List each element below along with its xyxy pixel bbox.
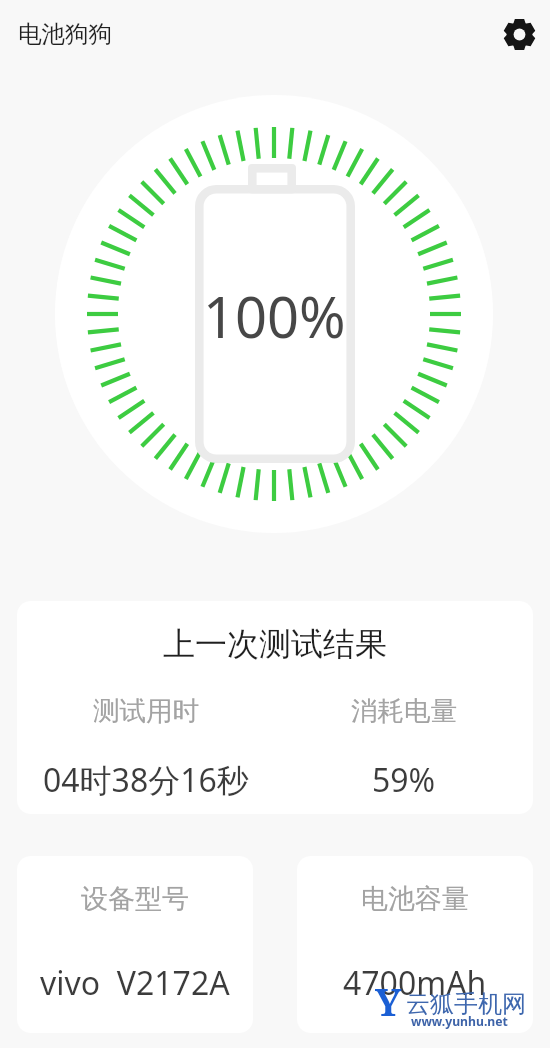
staticText: vivo V2172A: [40, 961, 230, 1005]
staticText: 上一次测试结果: [17, 624, 533, 664]
staticText: 04时38分16秒: [43, 758, 249, 802]
button[interactable]: 电池狗狗: [18, 19, 112, 49]
staticText: 消耗电量: [351, 694, 457, 727]
staticText: 100%: [203, 278, 346, 354]
button[interactable]: 电池容量: [297, 856, 533, 1033]
button[interactable]: 设备型号: [17, 856, 253, 1033]
staticText: 电池狗狗: [18, 19, 112, 49]
staticText: 59%: [372, 758, 436, 802]
button[interactable]: Settings: [497, 12, 541, 56]
staticText: 设备型号: [81, 882, 189, 916]
staticText: www.yunhu.net: [411, 1013, 508, 1030]
button[interactable]: 上一次测试结果: [17, 601, 533, 814]
staticText: 电池容量: [361, 882, 469, 916]
staticText: 云狐手机网: [406, 989, 526, 1019]
staticText: 4700mAh: [343, 961, 487, 1005]
staticText: Y: [375, 975, 402, 1027]
staticText: 测试用时: [93, 694, 199, 727]
